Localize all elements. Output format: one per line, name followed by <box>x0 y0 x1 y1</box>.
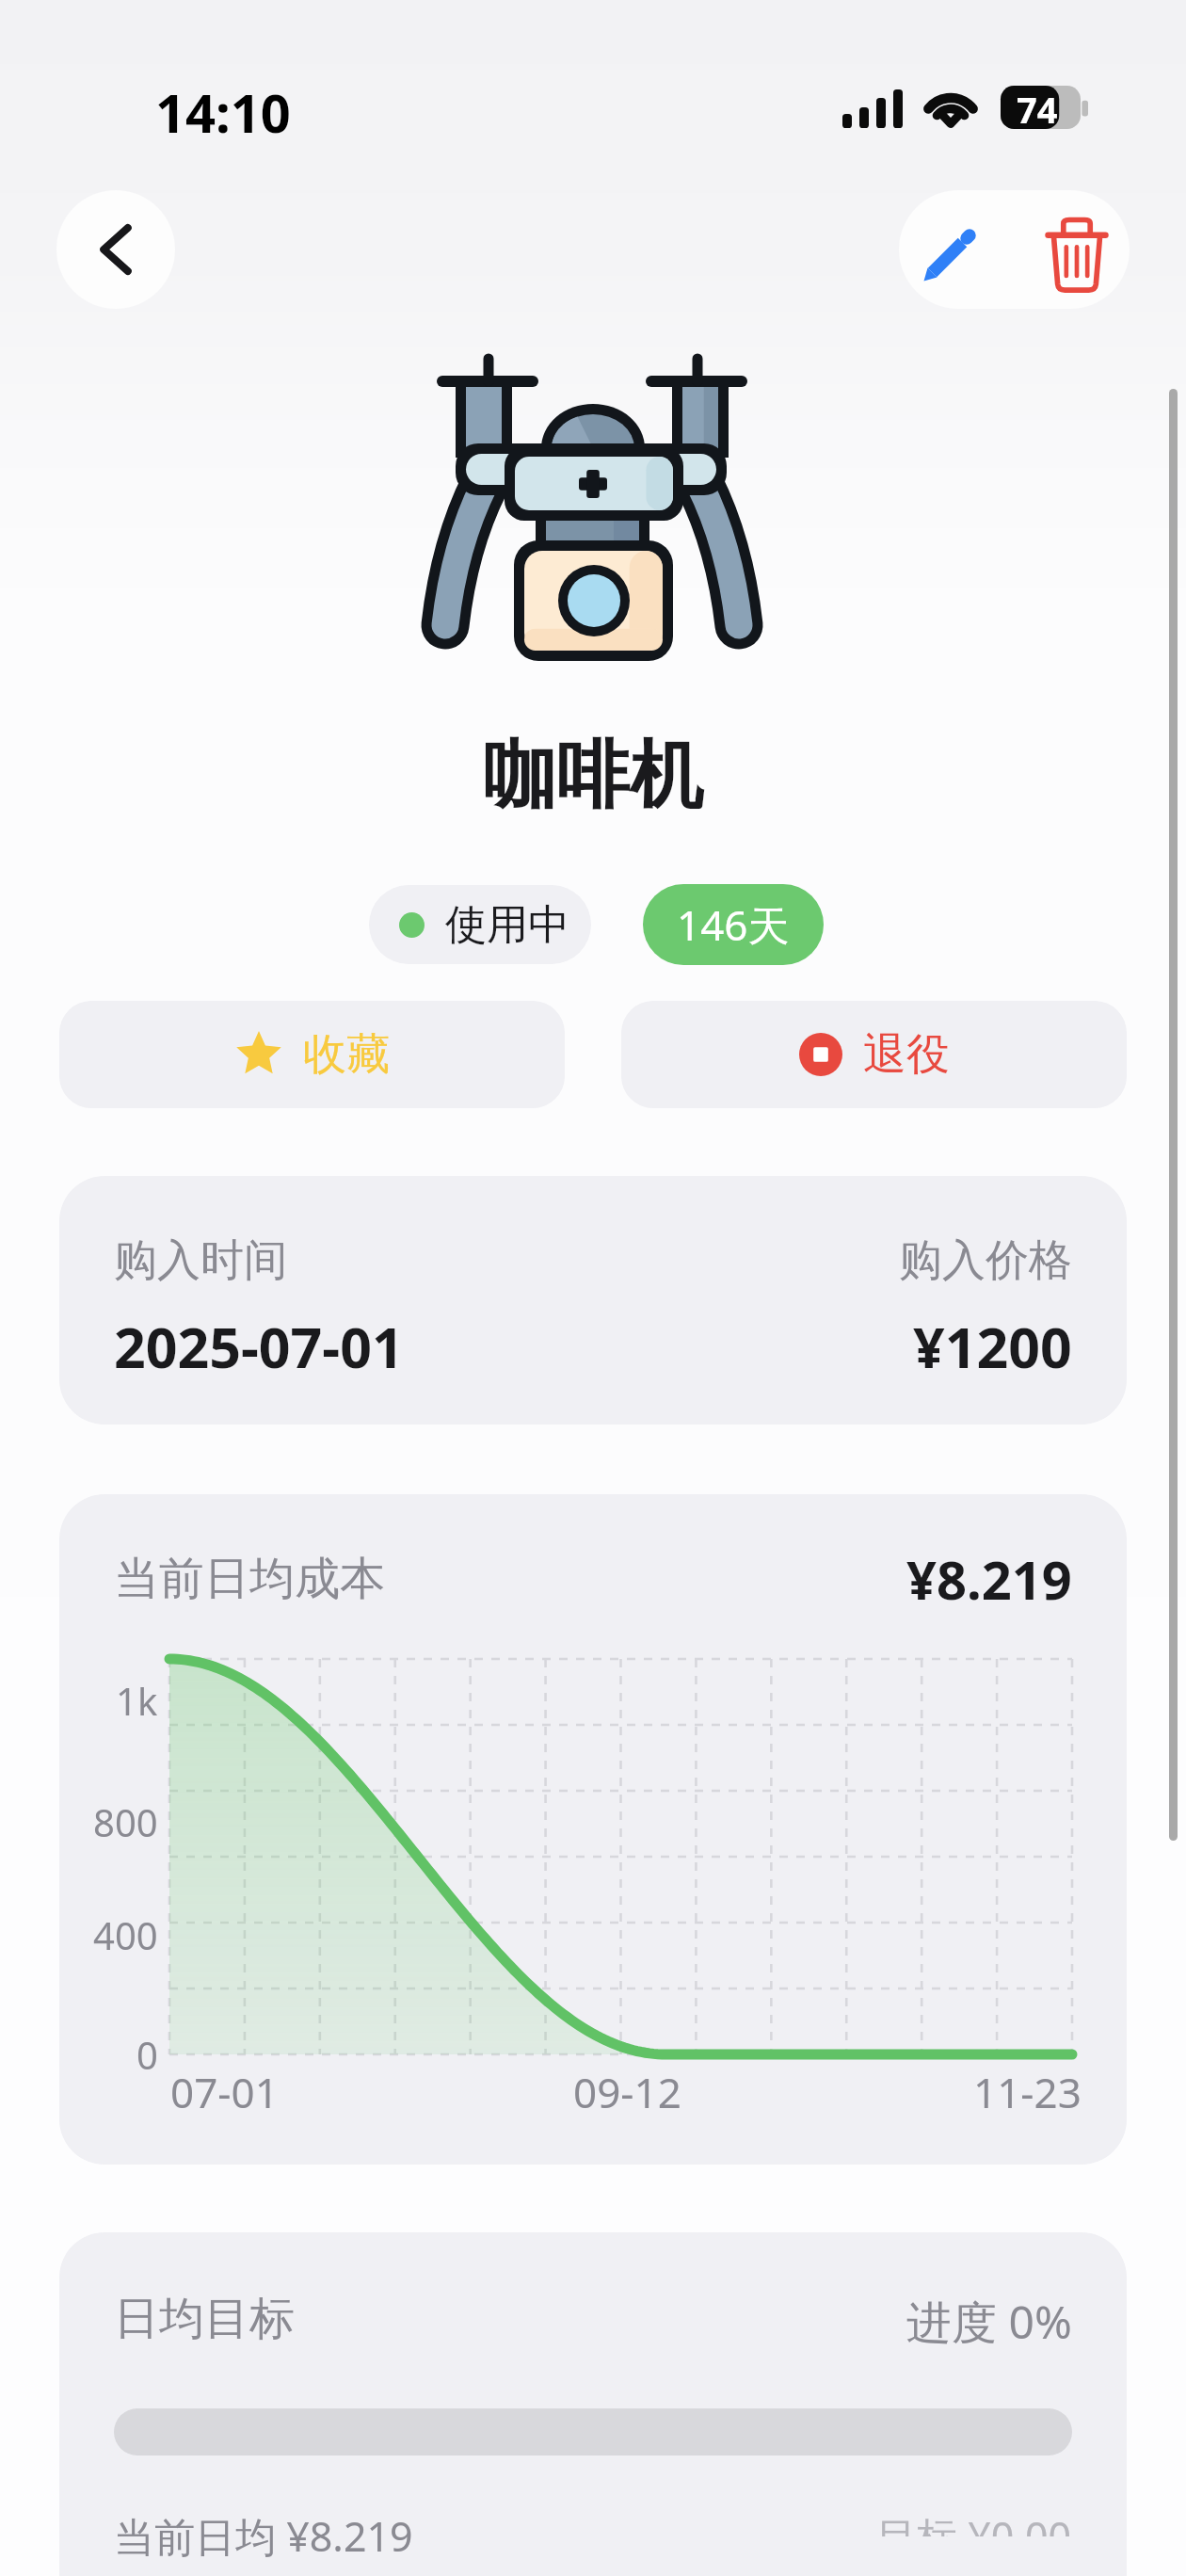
staticText: 使用中 <box>445 899 569 951</box>
staticText: 收藏 <box>303 1027 390 1082</box>
staticText: ¥8.219 <box>906 1543 1072 1615</box>
button[interactable]: 146天 <box>643 884 824 965</box>
staticText: 14:10 <box>155 76 291 148</box>
staticText: 目标 ¥0.00 <box>876 2508 1072 2536</box>
staticText: 进度 0% <box>906 2291 1072 2353</box>
button[interactable]: Delete <box>1014 190 1130 309</box>
staticText: 146天 <box>677 896 790 953</box>
staticText: 2025-07-01 <box>114 1309 404 1384</box>
staticText: 日均目标 <box>114 2291 295 2347</box>
staticText: 800 <box>93 1796 158 1847</box>
staticText: 购入时间 <box>114 1233 287 1288</box>
staticText: 400 <box>93 1909 158 1960</box>
staticText: 74 <box>1017 85 1058 128</box>
button[interactable]: 使用中 <box>369 885 591 964</box>
staticText: 09-12 <box>573 2064 681 2120</box>
staticText: 11-23 <box>973 2064 1082 2120</box>
staticText: 07-01 <box>170 2064 279 2120</box>
staticText: 当前日均 ¥8.219 <box>114 2508 413 2564</box>
button[interactable]: Back <box>56 190 175 309</box>
staticText: 购入价格 <box>899 1233 1072 1288</box>
button[interactable]: 收藏 <box>59 1001 565 1108</box>
staticText: 1k <box>116 1675 158 1726</box>
staticText: 当前日均成本 <box>114 1551 385 1607</box>
button[interactable]: Edit <box>899 190 1014 309</box>
staticText: 退役 <box>863 1027 950 1082</box>
button[interactable]: 退役 <box>621 1001 1127 1108</box>
staticText: ¥1200 <box>913 1309 1072 1384</box>
staticText: 0 <box>136 2029 158 2080</box>
staticText: 咖啡机 <box>0 730 1186 822</box>
